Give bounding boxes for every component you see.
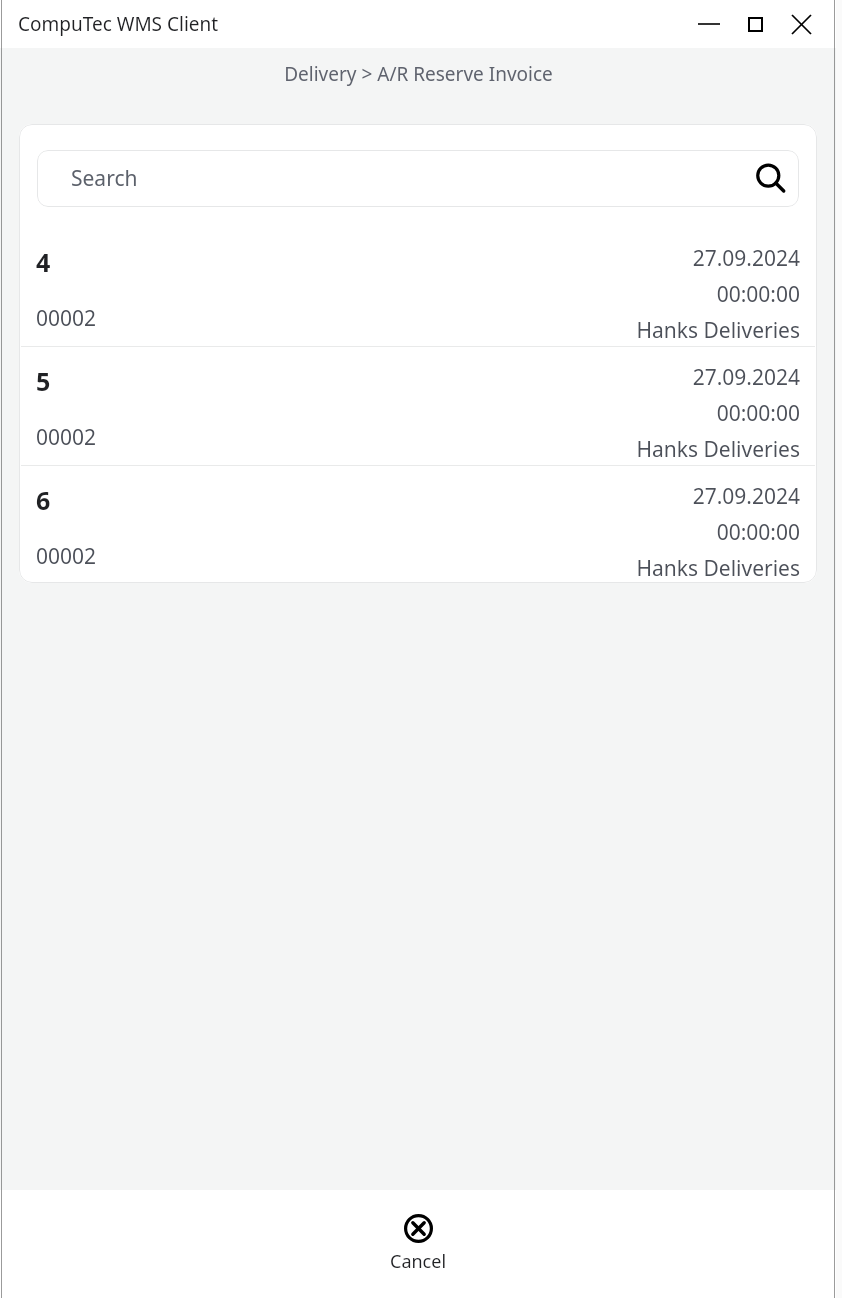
staticText: Hanks Deliveries bbox=[636, 316, 800, 345]
staticText: Hanks Deliveries bbox=[636, 435, 800, 464]
staticText: CompuTec WMS Client bbox=[18, 11, 219, 37]
button[interactable]: Minimize bbox=[686, 0, 732, 48]
staticText: 00002 bbox=[36, 304, 97, 333]
staticText: 00002 bbox=[36, 542, 97, 571]
staticText: 00002 bbox=[36, 423, 97, 452]
staticText: Hanks Deliveries bbox=[636, 554, 800, 583]
button[interactable]: Cancel bbox=[366, 1208, 471, 1280]
button[interactable]: Maximize bbox=[732, 0, 778, 48]
staticText: 6 bbox=[36, 483, 51, 517]
button[interactable]: 5 bbox=[19, 347, 817, 465]
staticText: Cancel bbox=[390, 1249, 447, 1274]
staticText: 00:00:00 bbox=[716, 280, 800, 309]
staticText: 27.09.2024 bbox=[692, 244, 800, 273]
staticText: 00:00:00 bbox=[716, 399, 800, 428]
staticText: 00:00:00 bbox=[716, 518, 800, 547]
staticText: 27.09.2024 bbox=[692, 363, 800, 392]
button[interactable]: Close bbox=[778, 0, 824, 48]
staticText: 5 bbox=[36, 364, 51, 398]
button[interactable]: 4 bbox=[19, 228, 817, 346]
button[interactable]: Search bbox=[37, 150, 799, 207]
staticText: Search bbox=[71, 164, 743, 193]
staticText: 4 bbox=[36, 245, 51, 279]
other: Search bbox=[743, 151, 799, 207]
staticText: 27.09.2024 bbox=[692, 482, 800, 511]
staticText: Delivery > A/R Reserve Invoice bbox=[284, 61, 553, 87]
button[interactable]: 6 bbox=[19, 466, 817, 583]
